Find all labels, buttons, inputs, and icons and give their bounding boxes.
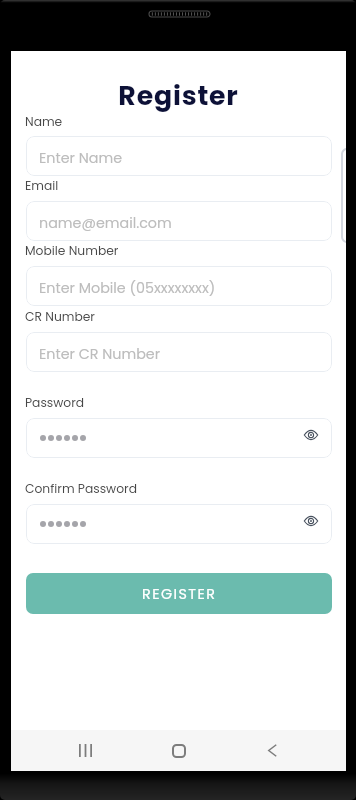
button[interactable]: name@email.com (26, 201, 332, 241)
staticText: Email (25, 177, 59, 194)
staticText: Enter Name (39, 148, 123, 168)
button[interactable]: Enter Name (26, 136, 332, 176)
button[interactable]: Back (251, 730, 293, 771)
button[interactable]: Toggle password visibility (299, 423, 323, 447)
button[interactable]: Toggle password visibility (26, 504, 332, 544)
staticText: REGISTER (142, 584, 217, 604)
staticText: Enter Mobile (05xxxxxxxx) (39, 278, 216, 298)
staticText: name@email.com (39, 213, 172, 233)
staticText: Enter CR Number (39, 344, 161, 364)
staticText: Name (25, 113, 63, 130)
button[interactable]: Toggle password visibility (26, 418, 332, 458)
button[interactable]: Recent apps (64, 730, 106, 771)
staticText: Password (25, 394, 85, 411)
staticText: Confirm Password (25, 480, 137, 497)
button[interactable]: Enter Mobile (05xxxxxxxx) (26, 266, 332, 306)
button[interactable]: Toggle password visibility (299, 509, 323, 533)
button[interactable]: Home (158, 730, 200, 771)
staticText: Register (11, 77, 346, 115)
button[interactable]: REGISTER (26, 573, 332, 614)
staticText: CR Number (25, 308, 95, 325)
button[interactable]: Enter CR Number (26, 332, 332, 372)
staticText: Mobile Number (25, 242, 119, 259)
